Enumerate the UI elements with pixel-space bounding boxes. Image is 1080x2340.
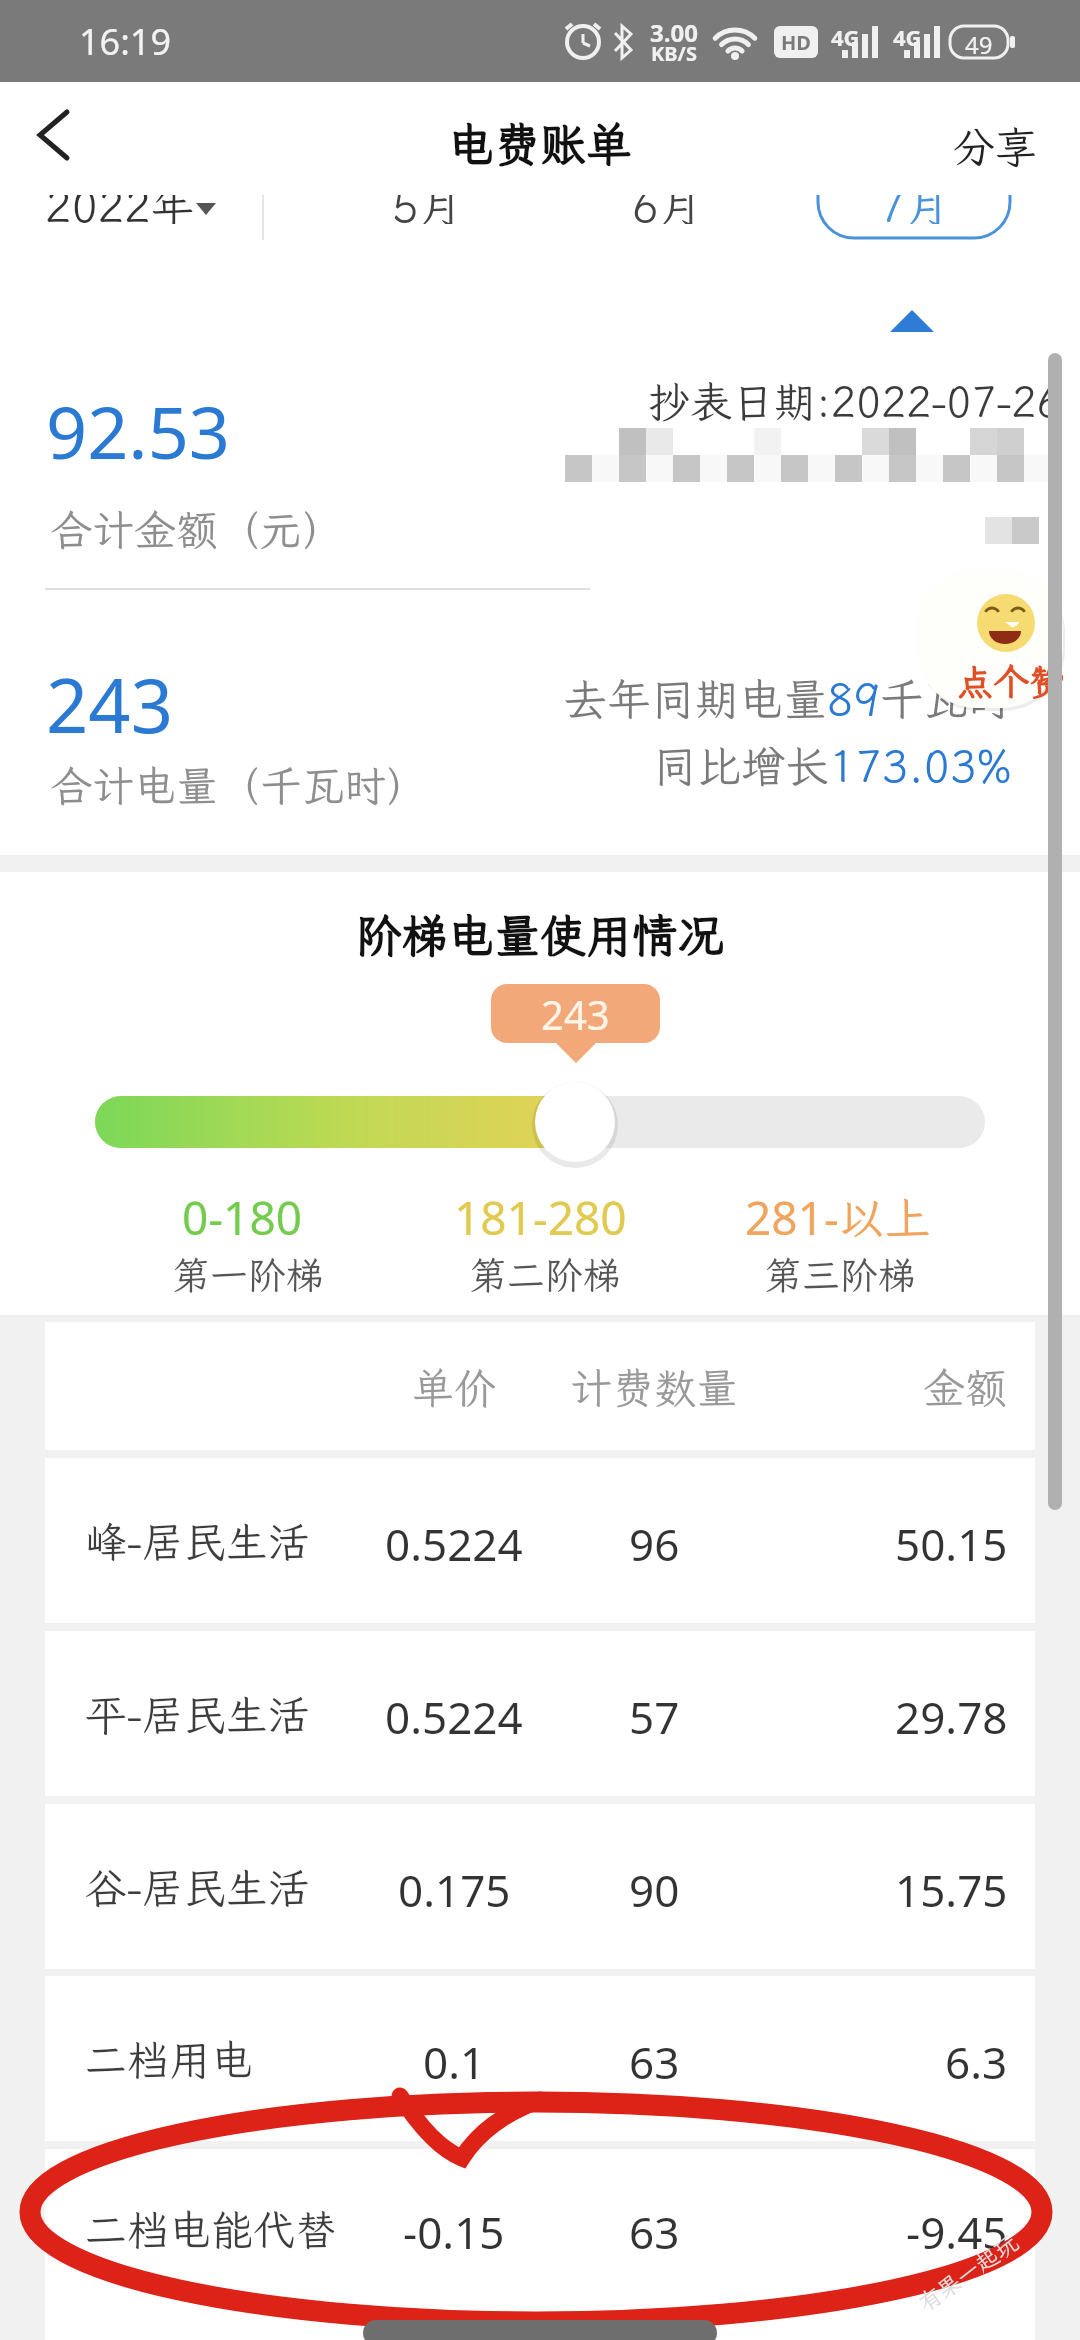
button[interactable]: 峰-居民生活 [45,1458,1035,1623]
staticText: 7月 [879,195,950,224]
staticText: 抄表日期:2022-07-26 [648,374,1062,426]
staticText: 6月 [632,195,703,224]
staticText: 4G [893,22,922,46]
staticText: HD [781,29,811,56]
staticText: 181-280 [454,1186,627,1238]
staticText: 243 [46,654,173,734]
button[interactable]: 平-居民生活 [45,1631,1035,1796]
staticText: 6.3 [945,2032,1008,2084]
staticText: 计费数量 [570,1360,739,1412]
staticText: KB/S [651,40,697,64]
staticText: 281-以上 [745,1186,931,1238]
staticText: 49 [965,28,993,56]
staticText: 0-180 [182,1186,303,1238]
staticText: 去年同期电量89千瓦时 [563,670,1012,724]
button[interactable]: 二档电能代替 [45,2149,1035,2340]
staticText: 63 [629,2202,680,2254]
staticText: 243 [541,987,610,1041]
button[interactable] [95,1096,985,1148]
staticText: 单价 [412,1360,497,1412]
staticText: 63 [629,2032,680,2084]
staticText: 3.00 [650,16,698,42]
staticText: 92.53 [46,382,231,462]
staticText: 第一阶梯 [172,1250,325,1298]
staticText: -9.45 [906,2202,1008,2254]
staticText: 4G [831,22,860,46]
staticText: 第三阶梯 [764,1250,917,1298]
staticText: 谷-居民生活 [85,1860,310,1912]
staticText: 96 [629,1514,680,1566]
staticText: 0.5224 [385,1514,523,1566]
staticText: 同比增长173.03% [653,737,1012,791]
staticText: 57 [629,1687,680,1739]
staticText: 15.75 [895,1860,1008,1912]
button[interactable]: 谷-居民生活 [45,1804,1035,1969]
button[interactable]: 5月 [380,195,475,224]
button[interactable]: 6月 [620,195,715,224]
staticText: 平-居民生活 [85,1687,310,1739]
staticText: 0.175 [398,1860,511,1912]
staticText: 5月 [392,195,463,224]
staticText: 阶梯电量使用情况 [356,905,724,965]
button[interactable]: 分享 [930,118,1060,174]
staticText: 电费账单 [448,114,632,174]
button[interactable] [10,94,100,178]
staticText: 峰-居民生活 [85,1514,310,1566]
button[interactable]: 二档用电 [45,1976,1035,2141]
staticText: -0.15 [403,2202,505,2254]
staticText: 合计金额（元） [50,502,345,552]
staticText: 29.78 [895,1687,1008,1739]
staticText: 0.5224 [385,1687,523,1739]
staticText: 二档用电 [85,2032,254,2084]
staticText: 金额 [923,1360,1008,1412]
staticText: 有果一起玩 [912,2227,1023,2317]
staticText: 第二阶梯 [469,1250,622,1298]
staticText: 0.1 [423,2032,486,2084]
staticText: 分享 [953,119,1038,174]
staticText: 2022年 [45,195,195,224]
staticText: 50.15 [895,1514,1008,1566]
staticText: 二档电能代替 [85,2202,338,2254]
button[interactable] [818,195,1010,238]
staticText: 合计电量（千瓦时） [50,758,429,808]
staticText: 90 [629,1860,680,1912]
staticText: 16:19 [79,17,172,66]
staticText: 点个赞 [957,658,1066,700]
